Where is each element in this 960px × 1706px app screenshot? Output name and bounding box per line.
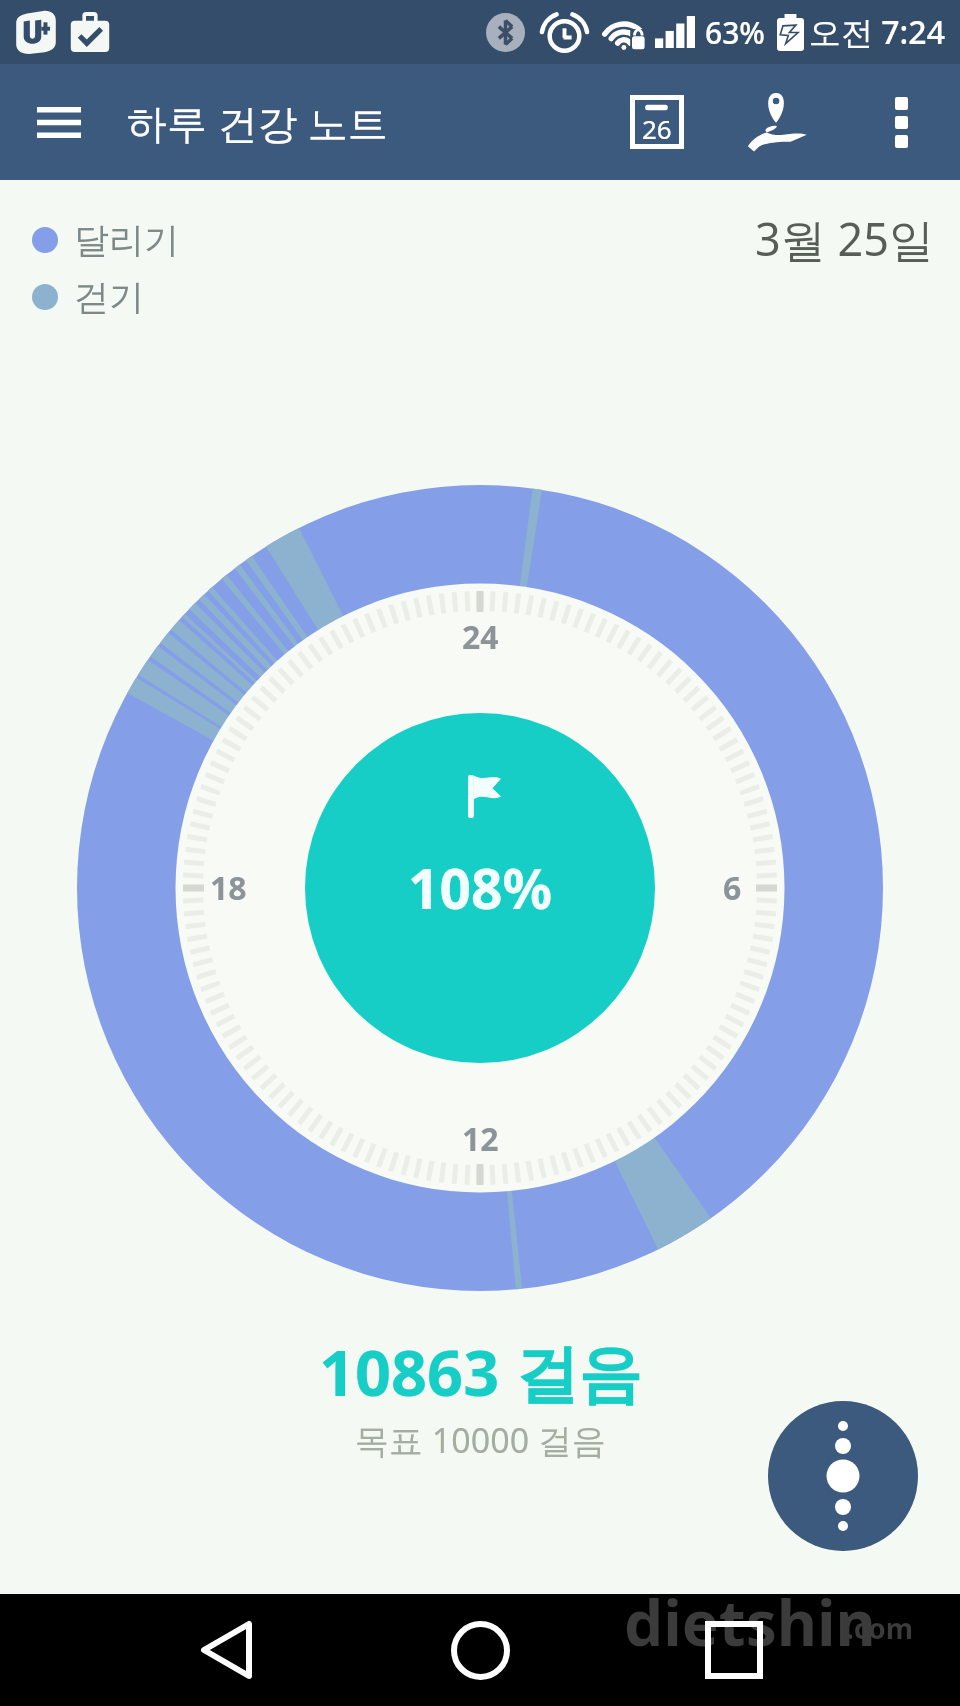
staticText: 하루 건강 노트 xyxy=(127,95,388,150)
staticText: 6 xyxy=(723,866,742,910)
staticText: 108% xyxy=(408,850,552,925)
staticText: 26 xyxy=(642,111,672,146)
button[interactable]: Recents xyxy=(678,1594,790,1706)
staticText: 달리기 xyxy=(74,218,179,262)
staticText: 12 xyxy=(462,1117,499,1161)
button[interactable]: Menu xyxy=(0,64,117,180)
button[interactable]: Back xyxy=(170,1594,282,1706)
staticText: dietshin xyxy=(624,1580,876,1664)
staticText: .com xyxy=(846,1609,914,1647)
button[interactable]: Home xyxy=(424,1594,536,1706)
staticText: 걷기 xyxy=(74,275,144,319)
staticText: 24 xyxy=(462,615,499,659)
staticText: 3월 25일 xyxy=(755,208,934,269)
staticText: 18 xyxy=(210,866,247,910)
button[interactable]: More actions xyxy=(768,1401,918,1551)
staticText: 오전 7:24 xyxy=(809,10,945,54)
button[interactable]: More options xyxy=(842,64,960,180)
button[interactable]: Calendar xyxy=(602,64,712,180)
button[interactable]: Route xyxy=(712,64,842,180)
staticText: 목표 10000 걸음 xyxy=(355,1417,606,1463)
staticText: 63% xyxy=(705,12,765,53)
staticText: 10863 걸음 xyxy=(319,1329,642,1415)
